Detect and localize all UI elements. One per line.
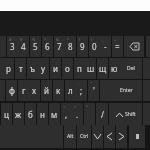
- staticText: =: [115, 41, 120, 52]
- button[interactable]: ^: [42, 36, 53, 57]
- button[interactable]: у: [38, 58, 49, 79]
- staticText: щ: [99, 63, 107, 74]
- staticText: Ctrl: [80, 133, 89, 140]
- staticText: (: [79, 37, 81, 42]
- staticText: *: [67, 37, 70, 42]
- button[interactable]: Alt: [64, 125, 76, 148]
- button[interactable]: ю: [109, 58, 120, 79]
- button[interactable]: к: [53, 80, 64, 101]
- button[interactable]: +: [112, 36, 123, 57]
- staticText: ;: [80, 85, 83, 96]
- staticText: /: [101, 109, 104, 120]
- button[interactable]: м: [49, 103, 60, 125]
- staticText: ': [93, 85, 95, 96]
- staticText: 7: [57, 41, 62, 52]
- staticText: ш: [87, 63, 95, 74]
- staticText: и: [53, 63, 58, 74]
- staticText: к: [56, 85, 61, 96]
- staticText: ж: [15, 109, 22, 120]
- staticText: >: [74, 104, 77, 109]
- staticText: 3: [10, 41, 15, 52]
- button[interactable]: <: [61, 103, 72, 125]
- staticText: Del: [127, 65, 135, 72]
- button[interactable]: т: [15, 58, 26, 79]
- button[interactable]: Right: [116, 125, 127, 148]
- staticText: 4: [21, 41, 26, 52]
- staticText: о: [65, 63, 70, 74]
- button[interactable]: Switch keyboard: [129, 125, 145, 148]
- button[interactable]: и: [50, 58, 61, 79]
- button[interactable]: #: [7, 36, 18, 57]
- button[interactable]: г: [18, 80, 29, 101]
- staticText: ): [91, 37, 93, 42]
- staticText: ъ: [30, 63, 35, 74]
- staticText: у: [41, 63, 46, 74]
- button[interactable]: р: [3, 58, 14, 79]
- staticText: г: [22, 85, 26, 96]
- staticText: р: [6, 63, 11, 74]
- button[interactable]: ъ: [27, 58, 38, 79]
- button[interactable]: Shift: [109, 103, 142, 125]
- button[interactable]: б: [25, 103, 36, 125]
- button[interactable]: Down: [92, 125, 103, 148]
- staticText: _: [102, 37, 104, 42]
- staticText: 0: [92, 41, 97, 52]
- button[interactable]: _: [100, 36, 111, 57]
- staticText: &: [56, 37, 59, 42]
- staticText: ю: [111, 63, 118, 74]
- button[interactable]: &: [54, 36, 65, 57]
- button[interactable]: Ctrl: [77, 125, 91, 148]
- staticText: ц: [4, 109, 9, 120]
- button[interactable]: >: [72, 103, 83, 125]
- button[interactable]: %: [30, 36, 41, 57]
- button[interactable]: ж: [13, 103, 24, 125]
- button[interactable]: ф: [6, 80, 17, 101]
- staticText: -: [104, 41, 107, 52]
- staticText: м: [51, 109, 58, 120]
- staticText: 5: [33, 41, 38, 52]
- staticText: <: [63, 104, 66, 109]
- button[interactable]: п: [74, 58, 85, 79]
- staticText: +: [114, 37, 117, 42]
- staticText: п: [77, 63, 82, 74]
- button[interactable]: (: [77, 36, 88, 57]
- button[interactable]: щ: [97, 58, 108, 79]
- button[interactable]: л: [65, 80, 76, 101]
- button[interactable]: ш: [85, 58, 96, 79]
- button[interactable]: *: [65, 36, 76, 57]
- button[interactable]: Backspace: [124, 36, 144, 57]
- button[interactable]: ): [89, 36, 100, 57]
- staticText: б: [28, 109, 33, 120]
- button[interactable]: Del: [120, 58, 142, 79]
- button[interactable]: ": [88, 80, 99, 101]
- button[interactable]: :: [76, 80, 87, 101]
- button[interactable]: $: [18, 36, 29, 57]
- staticText: 9: [80, 41, 85, 52]
- staticText: $: [20, 37, 23, 42]
- button[interactable]: ц: [1, 103, 12, 125]
- staticText: %: [32, 37, 36, 42]
- staticText: ": [90, 81, 92, 86]
- button[interactable]: о: [62, 58, 73, 79]
- button[interactable]: Enter: [111, 80, 142, 101]
- button[interactable]: /: [96, 103, 108, 125]
- staticText: й: [44, 85, 49, 96]
- staticText: л: [68, 85, 73, 96]
- staticText: х: [32, 85, 37, 96]
- button[interactable]: й: [41, 80, 52, 101]
- button[interactable]: н: [37, 103, 48, 125]
- staticText: Alt: [67, 133, 74, 140]
- button[interactable]: х: [29, 80, 40, 101]
- staticText: #: [9, 37, 12, 42]
- button[interactable]: Left: [104, 125, 115, 148]
